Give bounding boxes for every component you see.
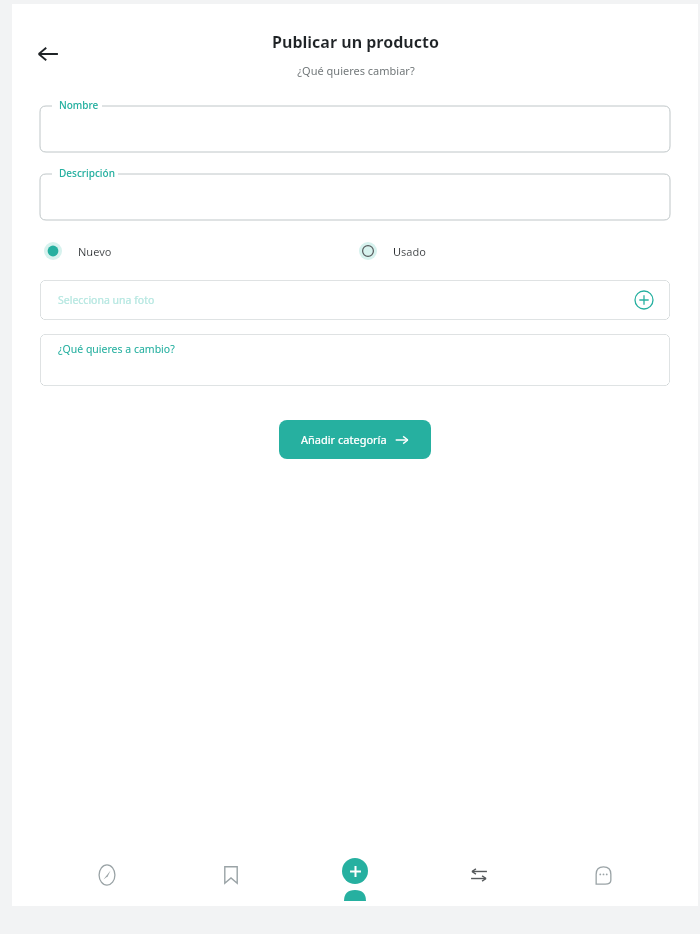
staticText: Publicar un producto [272,31,439,53]
button[interactable]: Add product [342,858,368,884]
button[interactable]: Exchange [450,849,508,901]
button[interactable]: Usado [355,238,670,264]
button[interactable]: Add [326,849,384,901]
staticText: Selecciona una foto [58,293,155,307]
staticText: ¿Qué quieres a cambio? [58,342,175,356]
staticText: Nombre [59,98,99,112]
button[interactable]: Back [26,32,70,76]
button[interactable]: Messages [574,849,632,901]
staticText: Nuevo [78,244,112,259]
button[interactable]: Nuevo [40,238,355,264]
button[interactable]: Explore [78,849,136,901]
button[interactable]: Saved [202,849,260,901]
staticText: Descripción [59,166,115,180]
staticText: Añadir categoría [301,432,387,447]
staticText: Usado [393,244,426,259]
button[interactable]: Selecciona una foto [40,280,670,320]
staticText: ¿Qué quieres cambiar? [297,63,415,78]
button[interactable]: Añadir categoría [279,420,431,459]
button[interactable]: ¿Qué quieres a cambio? [40,334,670,386]
